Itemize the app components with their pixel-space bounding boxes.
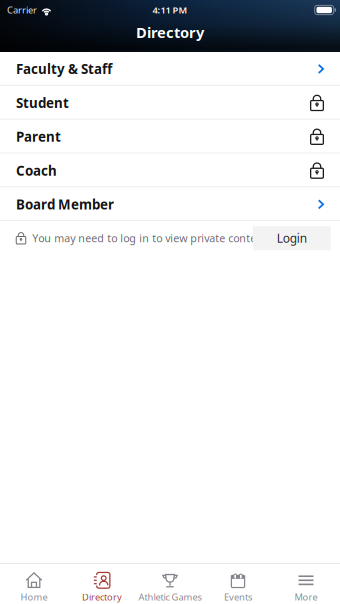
staticText: Carrier [7,4,37,16]
staticText: Student [16,94,69,112]
staticText: Home [20,591,47,603]
button[interactable]: Events [204,564,272,604]
button[interactable]: Board Member [0,187,340,221]
button[interactable]: More [272,564,340,604]
staticText: 4:11 PM [152,4,187,16]
button[interactable]: Home [0,564,68,604]
button[interactable]: Parent [0,120,340,154]
staticText: Board Member [16,195,114,213]
button[interactable]: Student [0,86,340,120]
staticText: Directory [82,591,122,603]
button[interactable]: Login [253,226,331,250]
button[interactable]: Athletic Games [136,564,204,604]
staticText: You may need to log in to view private c… [32,231,267,245]
staticText: Faculty & Staff [16,60,112,78]
button[interactable]: Directory [68,564,136,604]
staticText: Login [277,230,307,246]
button[interactable]: Coach [0,154,340,187]
staticText: Parent [16,128,61,145]
staticText: Events [224,591,252,603]
staticText: Coach [16,162,57,179]
button[interactable]: Faculty & Staff [0,52,340,86]
staticText: More [294,591,317,603]
staticText: Directory [136,22,204,42]
staticText: Athletic Games [138,591,201,603]
